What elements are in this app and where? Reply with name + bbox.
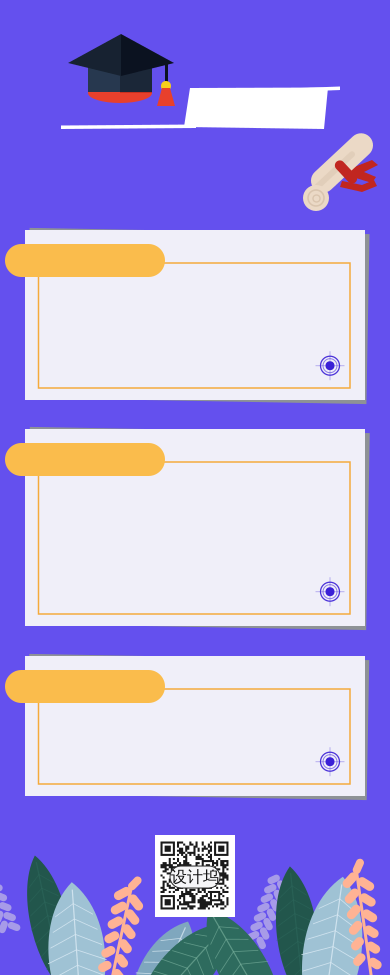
button[interactable] [25,429,365,626]
button[interactable] [25,656,365,796]
staticText: 设计坞 [171,867,219,887]
button[interactable] [25,230,365,400]
